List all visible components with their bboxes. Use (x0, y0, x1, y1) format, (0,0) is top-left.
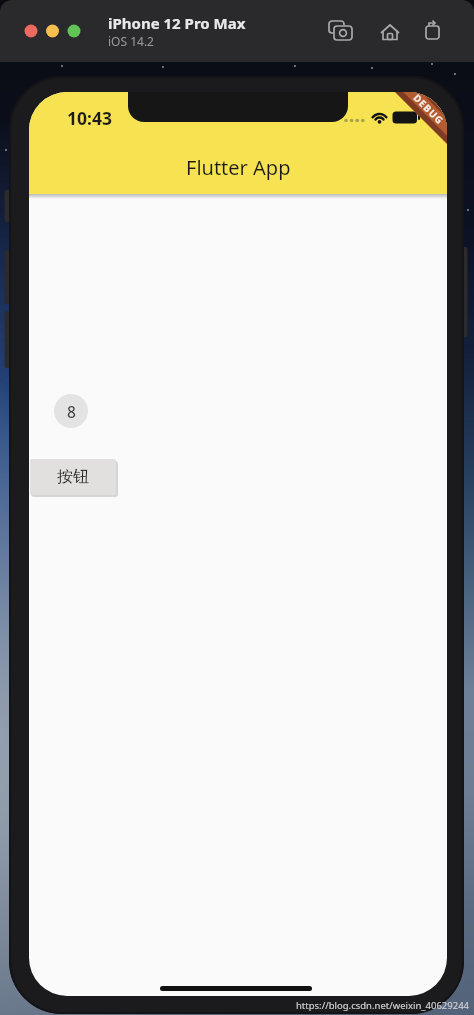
button[interactable]: 按钮 (30, 459, 116, 495)
staticText: iPhone 12 Pro Max (108, 13, 246, 33)
staticText: Flutter App (186, 154, 291, 181)
button[interactable]: 8 (54, 394, 88, 428)
staticText: iOS 14.2 (108, 33, 154, 49)
staticText: 8 (67, 401, 76, 422)
staticText: 按钮 (57, 467, 89, 487)
staticText: https://blog.csdn.net/weixin_40629244 (296, 999, 470, 1012)
staticText: 10:43 (67, 106, 112, 130)
staticText: DEBUG (411, 92, 447, 127)
